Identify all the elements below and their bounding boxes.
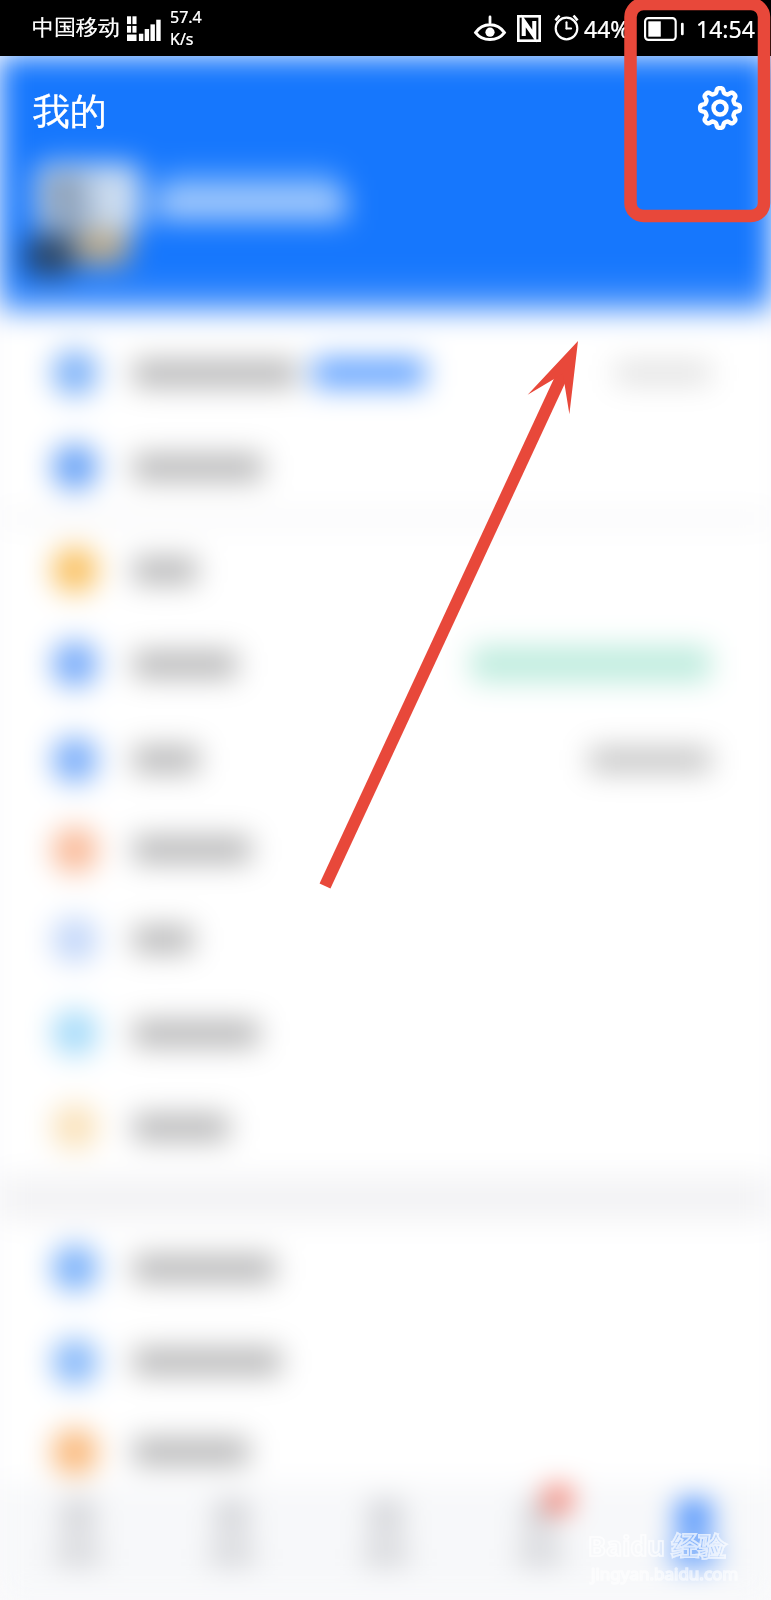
button[interactable] [0, 1315, 771, 1408]
button[interactable] [617, 1484, 771, 1564]
button[interactable] [0, 420, 771, 514]
button[interactable] [155, 1484, 309, 1564]
button[interactable] [0, 891, 771, 988]
button[interactable] [309, 1484, 463, 1564]
button[interactable] [0, 326, 771, 420]
button[interactable] [0, 1484, 155, 1564]
button[interactable] [463, 1484, 617, 1564]
staticText: 57.4 [170, 6, 202, 28]
staticText: 中国移动 [32, 14, 120, 42]
button[interactable] [0, 1078, 771, 1176]
button[interactable] [0, 523, 771, 617]
staticText: jingyan.baidu.com [591, 1562, 739, 1585]
staticText: K/s [170, 28, 194, 50]
button[interactable] [0, 808, 771, 891]
staticText: 44% [584, 13, 630, 44]
button[interactable] [0, 711, 771, 808]
staticText: 我的 [33, 88, 107, 135]
staticText: Baidu 经验 [588, 1527, 726, 1564]
button[interactable]: Settings [684, 72, 756, 144]
button[interactable] [0, 1221, 771, 1315]
button[interactable] [0, 1408, 771, 1495]
staticText: 14:54 [696, 13, 755, 44]
button[interactable] [0, 617, 771, 711]
button[interactable] [0, 988, 771, 1078]
